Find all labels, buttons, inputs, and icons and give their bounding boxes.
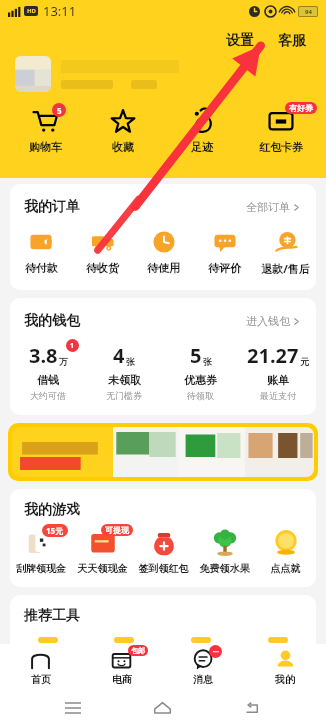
staticText: 足迹: [191, 140, 213, 154]
staticText: 借钱: [37, 373, 59, 387]
button[interactable]: 可提现: [72, 529, 133, 575]
staticText: 大约可借: [30, 390, 66, 401]
staticText: 客服: [278, 32, 306, 50]
staticText: 刮牌领现金: [10, 562, 72, 575]
button[interactable]: 待使用: [133, 230, 194, 275]
staticText: 未领取: [108, 373, 141, 387]
staticText: 红包卡券: [259, 140, 303, 154]
button[interactable]: 全部订单: [242, 196, 304, 218]
staticText: 21.27: [247, 342, 299, 369]
button[interactable]: 客服: [272, 30, 312, 52]
button[interactable]: 设置: [220, 30, 260, 52]
button[interactable]: 3.8: [10, 342, 86, 401]
staticText: 我的: [275, 673, 295, 686]
staticText: 有好券: [289, 103, 313, 113]
staticText: 待领取: [187, 390, 214, 401]
staticText: 元: [300, 356, 309, 367]
button[interactable]: 待收货: [72, 230, 133, 275]
button[interactable]: 待评价: [194, 230, 255, 275]
button[interactable]: 待付款: [10, 230, 72, 275]
staticText: 优惠券: [184, 373, 217, 387]
staticText: HD: [27, 7, 36, 15]
staticText: 首页: [31, 673, 51, 686]
button[interactable]: Back: [237, 694, 268, 722]
staticText: 万: [59, 356, 68, 367]
staticText: 包邮: [131, 646, 145, 655]
staticText: 待付款: [25, 261, 58, 275]
staticText: 免费领水果: [194, 562, 255, 575]
staticText: 我的订单: [24, 198, 80, 216]
button[interactable]: 包邮: [81, 644, 162, 690]
staticText: 张: [203, 356, 212, 367]
staticText: 待使用: [147, 261, 180, 275]
staticText: 4: [113, 342, 125, 369]
staticText: 购物车: [29, 140, 62, 154]
staticText: 点点就: [255, 562, 316, 575]
staticText: 张: [126, 356, 135, 367]
staticText: 最近支付: [260, 390, 296, 401]
button[interactable]: 收藏: [84, 106, 162, 156]
staticText: 账单: [267, 373, 289, 387]
staticText: 全部订单: [246, 200, 290, 214]
staticText: 电商: [112, 673, 132, 686]
button[interactable]: Promotion banner: [8, 423, 318, 481]
staticText: 5: [190, 342, 202, 369]
staticText: 我的游戏: [24, 501, 80, 519]
staticText: 收藏: [112, 140, 134, 154]
button[interactable]: 签到领红包: [133, 529, 194, 575]
staticText: 1: [70, 341, 75, 351]
staticText: 我的钱包: [24, 312, 80, 330]
button[interactable]: ···: [162, 644, 244, 690]
button[interactable]: 我的: [244, 644, 326, 690]
staticText: 退款/售后: [261, 261, 310, 276]
button[interactable]: Avatar: [15, 56, 51, 92]
button[interactable]: 点点就: [255, 529, 316, 575]
staticText: 可提现: [105, 525, 129, 535]
button[interactable]: 足迹: [162, 106, 241, 156]
button[interactable]: 免费领水果: [194, 529, 255, 575]
button[interactable]: 退款/售后: [255, 230, 316, 276]
staticText: 3.8: [29, 342, 58, 369]
staticText: 天天领现金: [72, 562, 133, 575]
button[interactable]: 21.27: [239, 342, 316, 401]
button[interactable]: 首页: [0, 644, 81, 690]
button[interactable]: 15元: [10, 529, 72, 575]
staticText: 5: [57, 105, 62, 116]
staticText: 进入钱包: [246, 314, 290, 328]
button[interactable]: Recents: [57, 694, 89, 722]
staticText: 15元: [46, 525, 64, 536]
staticText: 94: [305, 8, 312, 16]
staticText: 设置: [226, 32, 254, 50]
staticText: 13:11: [43, 2, 77, 20]
staticText: 无门槛券: [106, 390, 142, 401]
staticText: 待评价: [208, 261, 241, 275]
staticText: ···: [213, 647, 219, 657]
button[interactable]: 有好券: [241, 106, 320, 156]
staticText: 待收货: [86, 261, 119, 275]
staticText: 消息: [193, 673, 213, 686]
button[interactable]: Home: [146, 693, 179, 722]
button[interactable]: 5: [162, 342, 239, 401]
button[interactable]: 进入钱包: [242, 310, 304, 332]
staticText: 签到领红包: [133, 562, 194, 575]
button[interactable]: 5: [6, 106, 84, 156]
button[interactable]: 4: [86, 342, 162, 401]
staticText: 推荐工具: [24, 607, 80, 625]
